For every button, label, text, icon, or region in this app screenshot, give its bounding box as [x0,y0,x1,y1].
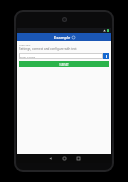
staticText: Label text [19,43,31,46]
staticText: SUBMIT [59,63,69,66]
button[interactable]: Submit [103,53,109,59]
button[interactable]: Home [57,154,71,163]
staticText: Settings, connect and configure with tex… [19,47,77,51]
button[interactable]: Back [43,154,57,163]
button[interactable]: Enter a value [19,53,103,59]
button[interactable]: Info [72,36,75,39]
button[interactable]: SUBMIT [19,61,109,67]
staticText: Example [54,35,71,40]
button[interactable]: Example [54,35,71,40]
staticText: Enter a value [20,55,36,58]
button[interactable]: Recents [71,154,85,163]
